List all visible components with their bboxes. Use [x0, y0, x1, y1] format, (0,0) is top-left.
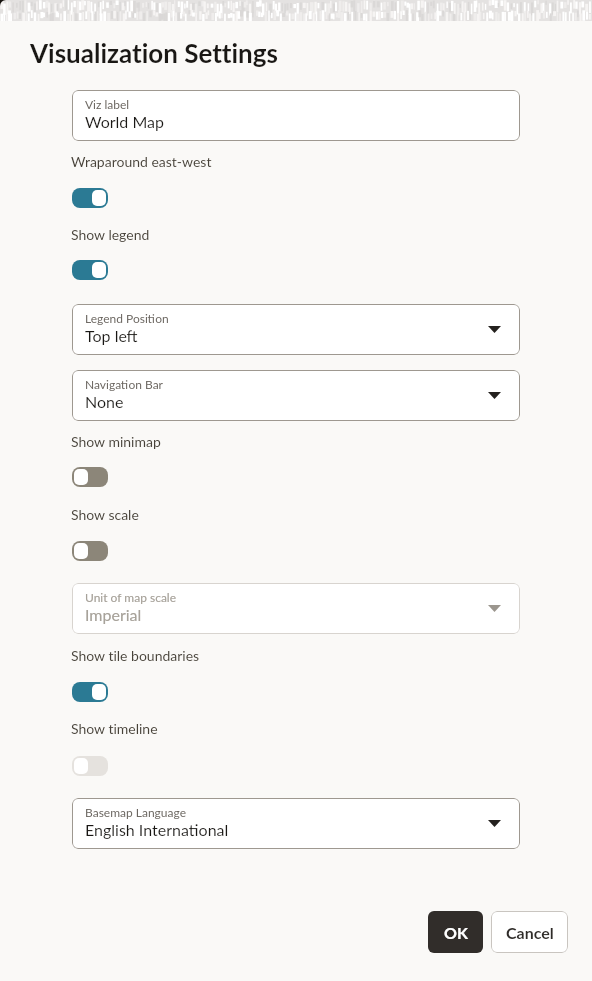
button[interactable] — [72, 541, 108, 561]
button[interactable]: Cancel — [491, 911, 568, 953]
button[interactable]: Basemap Language — [72, 798, 520, 849]
staticText: None — [85, 392, 124, 411]
button[interactable] — [72, 260, 108, 280]
staticText: Show legend — [71, 226, 150, 243]
staticText: Wraparound east-west — [71, 153, 212, 170]
staticText: Show scale — [71, 506, 139, 523]
staticText: Navigation Bar — [85, 377, 163, 391]
staticText: Show minimap — [71, 433, 161, 450]
button[interactable] — [72, 188, 108, 208]
staticText: Unit of map scale — [85, 590, 177, 604]
staticText: Viz label — [85, 97, 130, 111]
staticText: Cancel — [506, 923, 554, 942]
staticText: Basemap Language — [85, 805, 186, 819]
staticText: World Map — [85, 112, 164, 131]
staticText: Show timeline — [71, 720, 158, 737]
staticText: Top left — [85, 326, 138, 345]
staticText: Imperial — [85, 605, 142, 624]
staticText: Legend Position — [85, 311, 169, 325]
button[interactable] — [72, 467, 108, 487]
staticText: Show tile boundaries — [71, 647, 200, 664]
button[interactable]: Legend Position — [72, 304, 520, 355]
staticText: OK — [444, 923, 468, 942]
button[interactable]: Navigation Bar — [72, 370, 520, 421]
staticText: Visualization Settings — [30, 37, 278, 68]
staticText: English International — [85, 820, 229, 839]
button[interactable]: OK — [428, 911, 483, 953]
button[interactable] — [72, 756, 108, 776]
button[interactable]: Viz label — [72, 90, 520, 141]
button[interactable]: Unit of map scale — [72, 583, 520, 634]
button[interactable] — [72, 682, 108, 702]
